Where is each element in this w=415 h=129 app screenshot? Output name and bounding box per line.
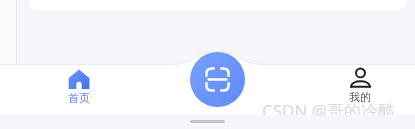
button[interactable]: Scan — [190, 52, 245, 107]
staticText: 首页 — [68, 91, 90, 105]
button[interactable]: 我的 — [324, 64, 396, 110]
staticText: 我的 — [349, 90, 371, 104]
staticText: CSDN @哥的冷酷 — [262, 99, 396, 122]
button[interactable]: 首页 — [43, 66, 115, 110]
